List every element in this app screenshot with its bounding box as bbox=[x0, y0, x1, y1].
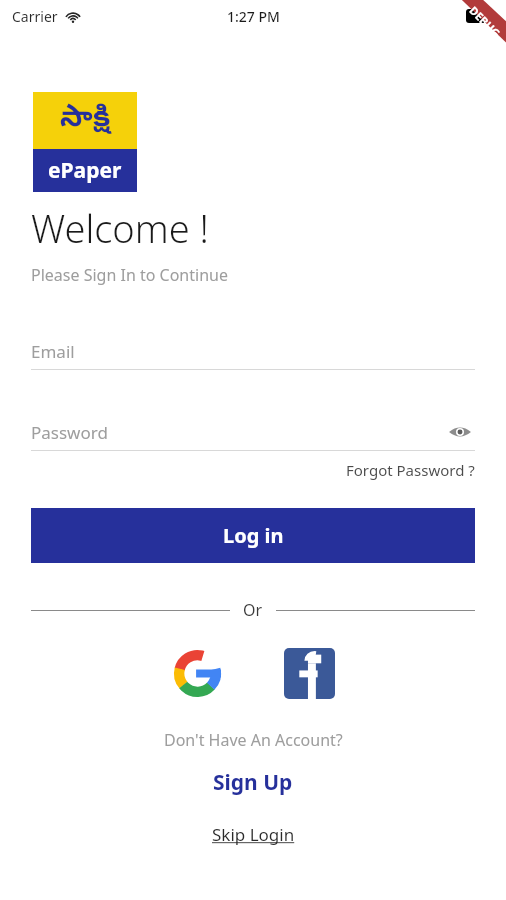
staticText: Don't Have An Account? bbox=[164, 729, 343, 751]
button[interactable]: Show password bbox=[445, 417, 475, 447]
staticText: ePaper bbox=[48, 156, 122, 185]
button[interactable]: Log in bbox=[31, 508, 475, 563]
button[interactable]: Skip Login bbox=[212, 823, 295, 846]
staticText: Log in bbox=[223, 522, 284, 549]
button[interactable]: Sign in with Facebook bbox=[283, 647, 335, 699]
button[interactable]: Password bbox=[31, 414, 475, 451]
button[interactable]: Sign Up bbox=[213, 768, 293, 797]
staticText: Skip Login bbox=[212, 823, 295, 846]
staticText: సాక్షి bbox=[60, 101, 111, 140]
staticText: 1:27 PM bbox=[227, 7, 280, 26]
staticText: Email bbox=[31, 340, 75, 363]
staticText: Welcome ! bbox=[31, 202, 209, 254]
staticText: Forgot Password ? bbox=[346, 460, 475, 480]
staticText: Sign Up bbox=[213, 768, 293, 797]
button[interactable]: Email bbox=[31, 333, 475, 370]
staticText: Carrier bbox=[12, 7, 58, 26]
button[interactable]: Forgot Password ? bbox=[346, 460, 475, 480]
button[interactable]: Sign in with Google bbox=[171, 647, 223, 699]
staticText: Or bbox=[243, 599, 263, 621]
staticText: Please Sign In to Continue bbox=[31, 264, 228, 286]
staticText: DEBUG bbox=[466, 3, 504, 40]
staticText: Password bbox=[31, 421, 108, 444]
